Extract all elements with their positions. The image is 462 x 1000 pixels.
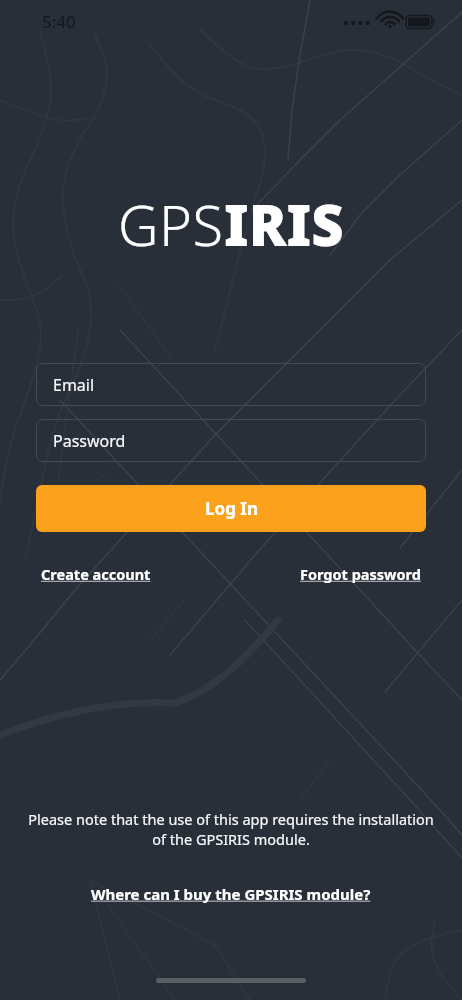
button[interactable]: Email (36, 363, 426, 406)
staticText: Create account (41, 564, 151, 584)
staticText: Email (53, 374, 95, 396)
button[interactable]: Forgot password (295, 561, 426, 587)
button[interactable]: Create account (36, 561, 156, 587)
button[interactable]: Log In (36, 485, 426, 532)
staticText: Forgot password (300, 564, 421, 584)
button[interactable]: Where can I buy the GPSIRIS module? (85, 881, 377, 907)
staticText: Where can I buy the GPSIRIS module? (91, 884, 371, 904)
button[interactable]: Password (36, 419, 426, 462)
staticText: GPS (118, 186, 224, 262)
staticText: IRIS (224, 186, 344, 262)
staticText: Please note that the use of this app req… (20, 809, 442, 850)
staticText: Password (53, 430, 126, 452)
staticText: 5:40 (42, 10, 76, 33)
staticText: Log In (205, 497, 258, 520)
